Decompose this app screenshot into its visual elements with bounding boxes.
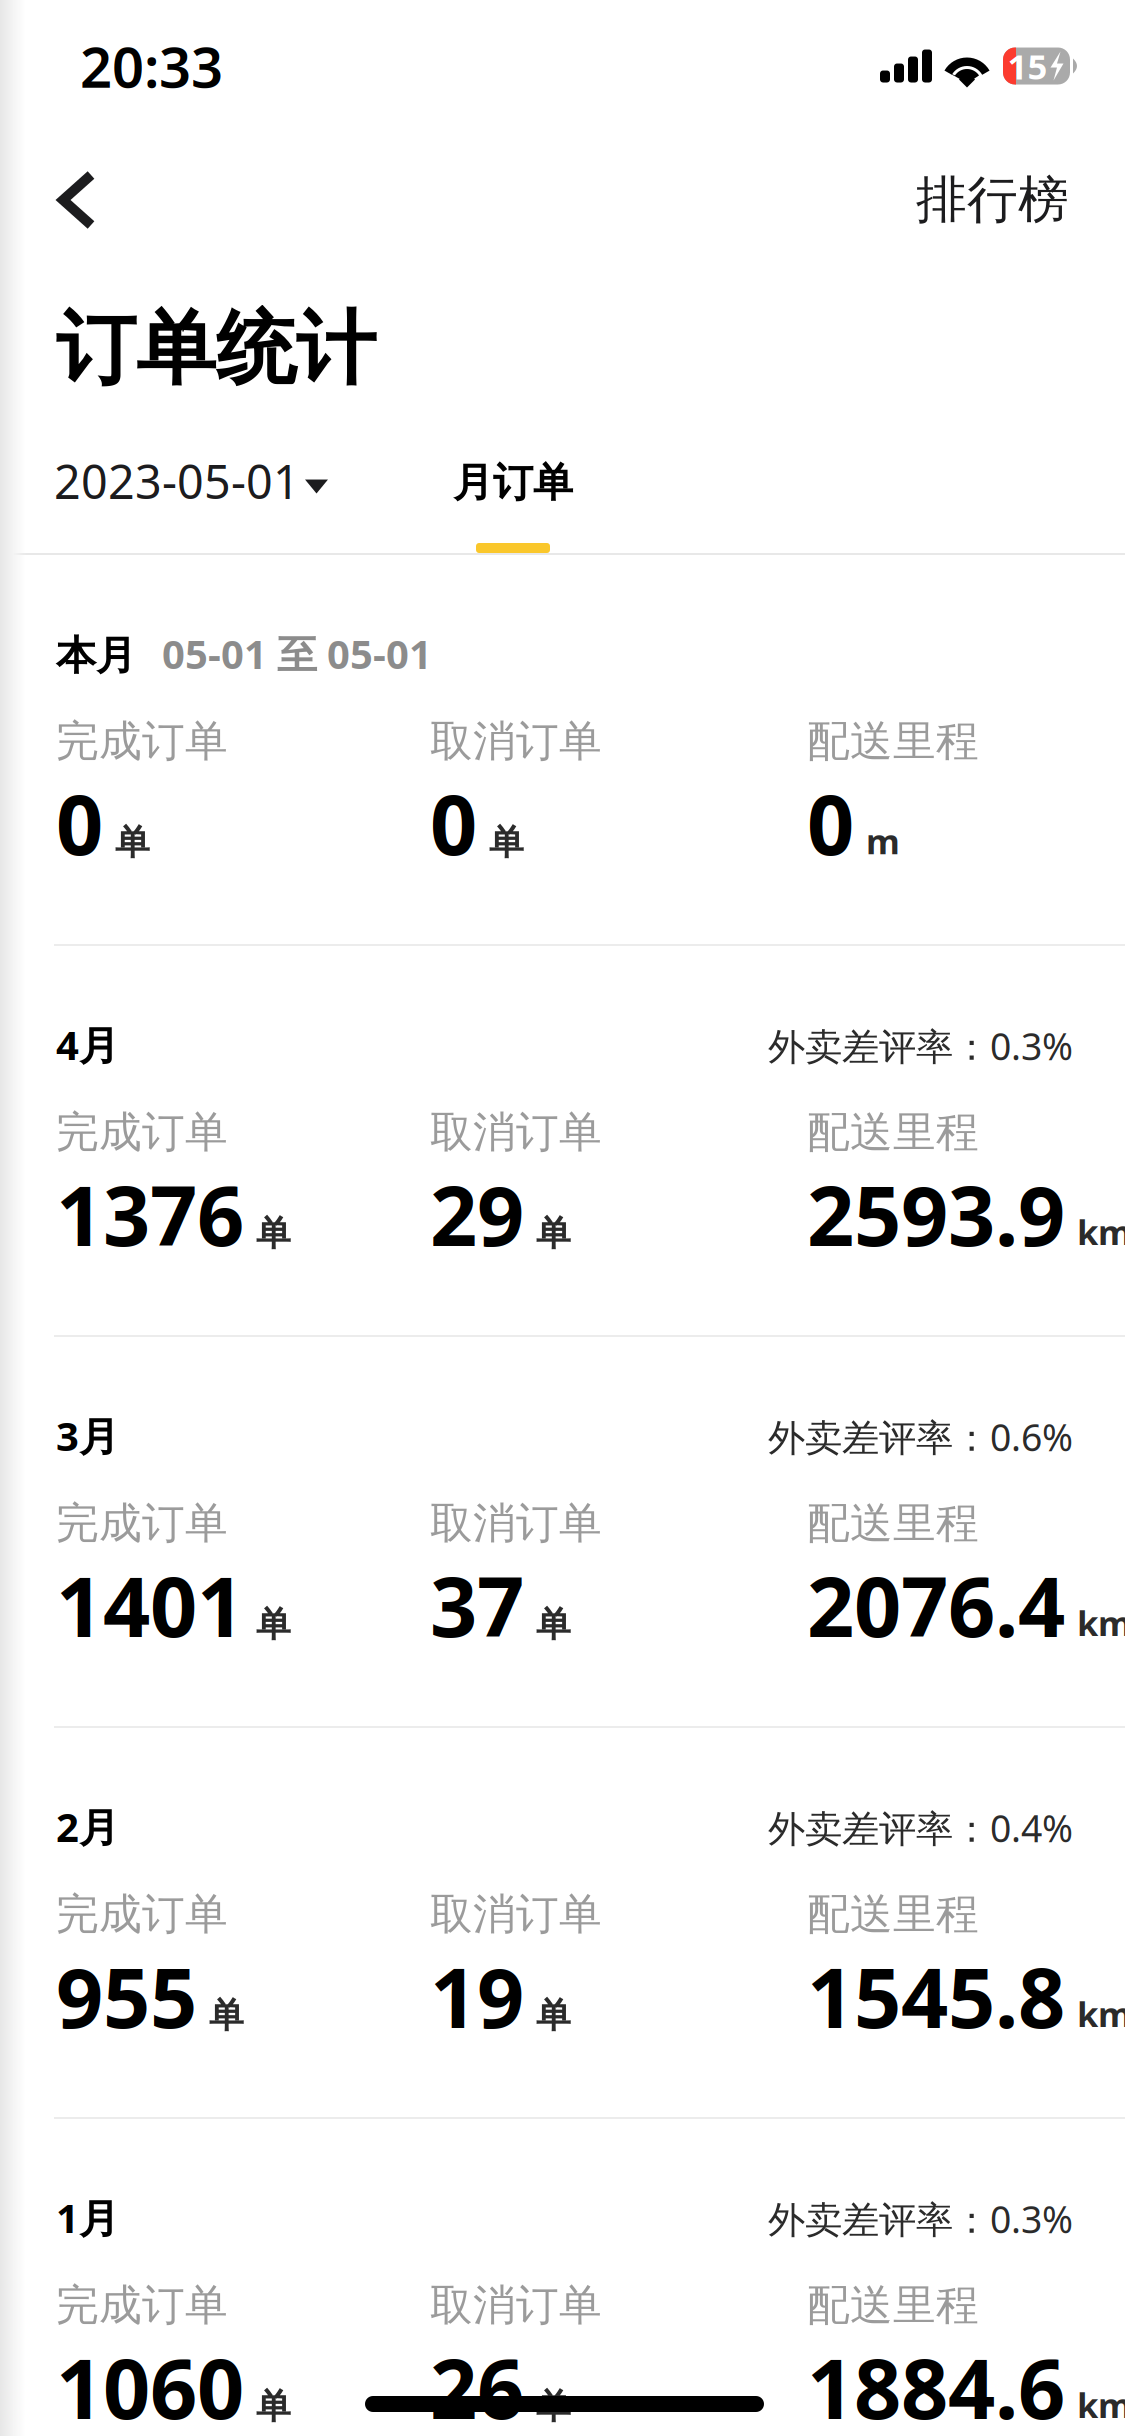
staticText: 完成订单: [56, 2279, 228, 2331]
button[interactable]: 排行榜: [888, 140, 1097, 260]
staticText: 1884.6: [807, 2332, 1065, 2436]
staticText: 单: [115, 821, 150, 864]
staticText: 外卖差评率：0.4%: [768, 1803, 1073, 1853]
staticText: 0: [56, 768, 103, 878]
staticText: 26: [430, 2332, 524, 2436]
button[interactable]: 3月: [0, 1335, 1125, 1726]
staticText: 2月: [56, 1800, 119, 1853]
staticText: 配送里程: [807, 715, 979, 767]
staticText: 37: [430, 1550, 524, 1660]
staticText: 外卖差评率：0.3%: [768, 2194, 1073, 2244]
staticText: km: [1077, 1600, 1125, 1646]
staticText: 单: [536, 2385, 571, 2428]
staticText: 单: [209, 1994, 244, 2037]
staticText: 配送里程: [807, 1497, 979, 1549]
staticText: km: [1077, 1991, 1125, 2037]
staticText: 完成订单: [56, 1106, 228, 1158]
staticText: 外卖差评率：0.6%: [768, 1412, 1073, 1462]
button[interactable]: 返回: [0, 140, 180, 260]
staticText: 单: [536, 1994, 571, 2037]
staticText: 4月: [56, 1018, 119, 1071]
staticText: 0: [807, 768, 854, 878]
button[interactable]: 2023-05-01: [54, 455, 328, 507]
staticText: 完成订单: [56, 1497, 228, 1549]
staticText: 取消订单: [430, 1497, 602, 1549]
staticText: 1月: [56, 2191, 119, 2244]
staticText: 单: [489, 821, 524, 864]
staticText: 单: [256, 1212, 291, 1255]
staticText: 订单统计: [56, 300, 376, 398]
staticText: 955: [56, 1941, 197, 2051]
staticText: 取消订单: [430, 1106, 602, 1158]
staticText: 1401: [56, 1550, 244, 1660]
staticText: 0: [430, 768, 477, 878]
staticText: 20:33: [80, 29, 223, 103]
staticText: 配送里程: [807, 1888, 979, 1940]
staticText: 29: [430, 1159, 524, 1269]
staticText: 单: [536, 1603, 571, 1646]
staticText: 取消订单: [430, 715, 602, 767]
button[interactable]: 月订单: [452, 458, 574, 553]
staticText: 单: [256, 1603, 291, 1646]
staticText: km: [1077, 2382, 1125, 2428]
staticText: 月订单: [453, 458, 573, 507]
staticText: 配送里程: [807, 2279, 979, 2331]
staticText: 外卖差评率：0.3%: [768, 1021, 1073, 1071]
staticText: 单: [256, 2385, 291, 2428]
button[interactable]: 2月: [0, 1726, 1125, 2117]
staticText: 完成订单: [56, 1888, 228, 1940]
staticText: 取消订单: [430, 2279, 602, 2331]
staticText: 2593.9: [807, 1159, 1065, 1269]
staticText: 2076.4: [807, 1550, 1065, 1660]
staticText: km: [1077, 1209, 1125, 1255]
button[interactable]: 本月: [0, 553, 1125, 944]
staticText: 取消订单: [430, 1888, 602, 1940]
staticText: 排行榜: [916, 169, 1069, 231]
staticText: 19: [430, 1941, 524, 2051]
staticText: 本月: [56, 631, 136, 680]
staticText: 2023-05-01: [54, 450, 300, 512]
staticText: 1376: [56, 1159, 244, 1269]
staticText: 1060: [56, 2332, 244, 2436]
staticText: m: [866, 818, 900, 864]
staticText: 完成订单: [56, 715, 228, 767]
staticText: 15: [1007, 43, 1047, 89]
staticText: 1545.8: [807, 1941, 1065, 2051]
button[interactable]: 4月: [0, 944, 1125, 1335]
staticText: 05-01 至 05-01: [162, 627, 432, 680]
staticText: 3月: [56, 1409, 119, 1462]
staticText: 单: [536, 1212, 571, 1255]
staticText: 配送里程: [807, 1106, 979, 1158]
button[interactable]: 1月: [0, 2117, 1125, 2436]
